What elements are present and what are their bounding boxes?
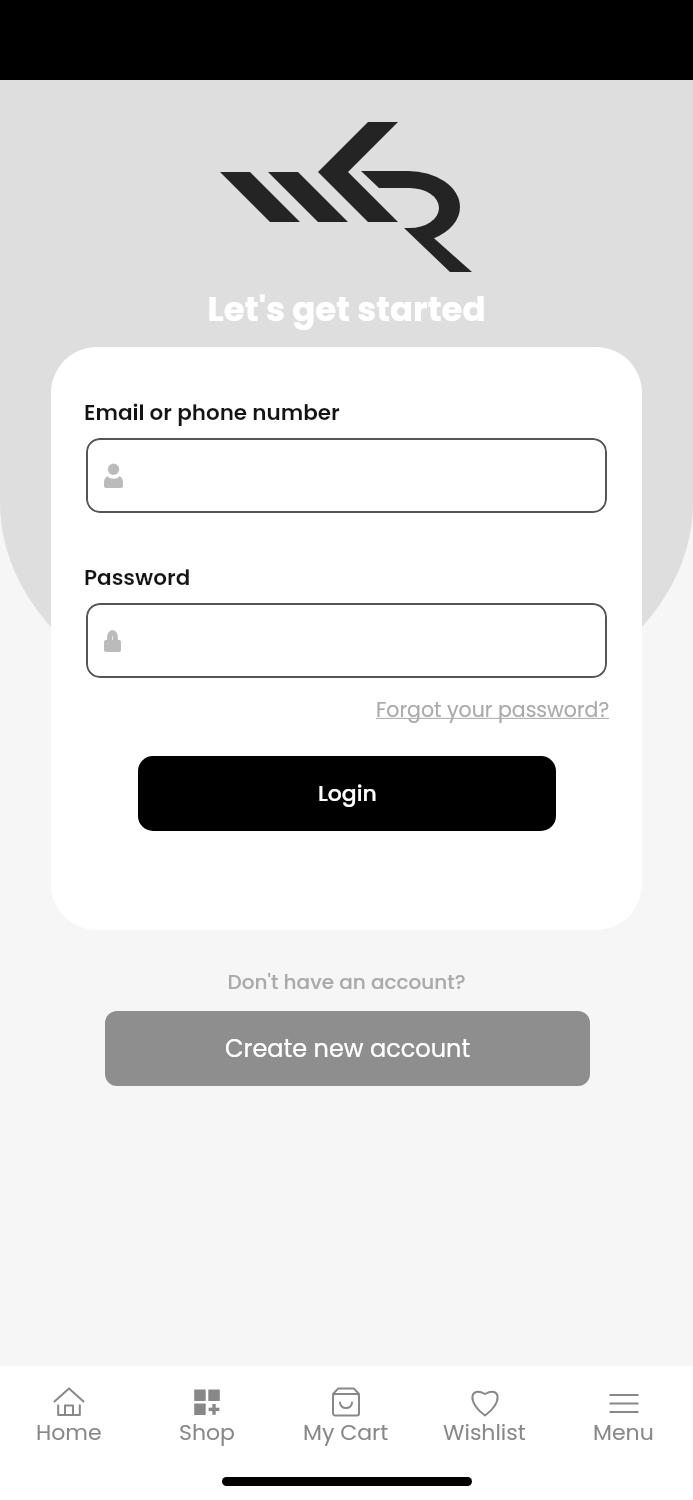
staticText: Password xyxy=(84,562,191,592)
button[interactable] xyxy=(86,603,607,678)
other: Menu xyxy=(607,1387,641,1417)
staticText: Forgot your password? xyxy=(376,695,610,724)
staticText: Menu xyxy=(593,1417,654,1448)
button[interactable]: Login xyxy=(138,756,556,831)
staticText: Wishlist xyxy=(443,1417,526,1448)
staticText: Create new account xyxy=(225,1032,471,1066)
button[interactable]: Home xyxy=(0,1387,138,1448)
other: Home xyxy=(52,1387,86,1417)
staticText: My Cart xyxy=(303,1417,389,1448)
button[interactable]: Forgot your password? xyxy=(376,695,610,724)
staticText: Let's get started xyxy=(0,285,693,333)
staticText: Home xyxy=(36,1417,102,1448)
staticText: Email or phone number xyxy=(84,397,340,427)
button[interactable] xyxy=(86,438,607,513)
button[interactable]: Wishlist xyxy=(415,1387,554,1448)
staticText: Shop xyxy=(179,1417,235,1448)
other: Shop xyxy=(190,1387,224,1417)
button[interactable]: Shop xyxy=(138,1387,276,1448)
button[interactable]: My Cart xyxy=(276,1387,415,1448)
button[interactable]: Create new account xyxy=(105,1011,590,1086)
other: Wishlist xyxy=(468,1387,502,1417)
other: My Cart xyxy=(329,1387,363,1417)
staticText: Don't have an account? xyxy=(0,968,693,996)
button[interactable]: Menu xyxy=(554,1387,693,1448)
staticText: Login xyxy=(318,778,377,809)
